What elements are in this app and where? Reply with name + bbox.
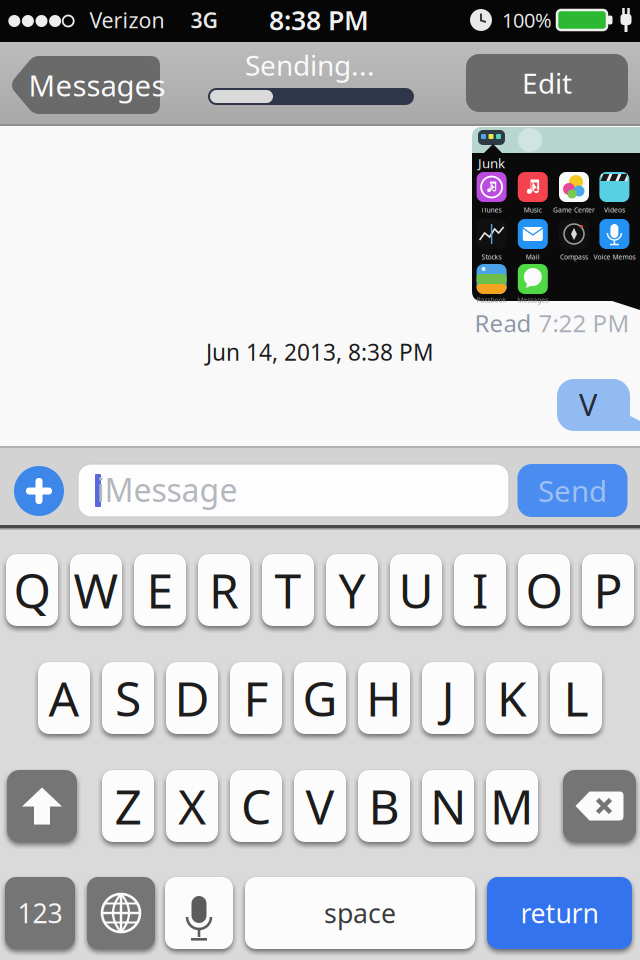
button[interactable]: Shift bbox=[7, 770, 77, 842]
button[interactable]: K bbox=[486, 662, 538, 734]
button[interactable]: F bbox=[230, 662, 282, 734]
staticText: Music bbox=[524, 206, 542, 214]
staticText: F bbox=[243, 666, 268, 730]
button[interactable]: X bbox=[166, 770, 218, 842]
button[interactable]: R bbox=[198, 554, 250, 626]
button[interactable]: D bbox=[166, 662, 218, 734]
staticText: iMessage bbox=[96, 468, 237, 511]
button[interactable]: L bbox=[550, 662, 602, 734]
button[interactable]: iMessage text field bbox=[78, 464, 509, 517]
staticText: V bbox=[579, 384, 597, 424]
button[interactable]: W bbox=[70, 554, 122, 626]
button[interactable]: return bbox=[487, 877, 632, 949]
staticText: Sending... bbox=[245, 46, 375, 84]
staticText: 8:38 PM bbox=[269, 2, 369, 38]
button[interactable]: Next keyboard bbox=[87, 877, 155, 949]
staticText: Stocks bbox=[482, 253, 502, 261]
staticText: R bbox=[209, 558, 239, 622]
button[interactable]: C bbox=[230, 770, 282, 842]
staticText: Compass bbox=[560, 253, 588, 261]
button[interactable]: E bbox=[134, 554, 186, 626]
staticText: I bbox=[472, 558, 488, 622]
staticText: W bbox=[73, 558, 118, 622]
button[interactable]: M bbox=[486, 770, 538, 842]
staticText: Q bbox=[13, 558, 50, 622]
staticText: iTunes bbox=[482, 206, 502, 214]
staticText: M bbox=[490, 774, 534, 838]
button[interactable]: B bbox=[358, 770, 410, 842]
staticText: space bbox=[324, 895, 396, 931]
button[interactable]: O bbox=[518, 554, 570, 626]
staticText: E bbox=[146, 558, 173, 622]
button[interactable]: Y bbox=[326, 554, 378, 626]
button[interactable]: P bbox=[582, 554, 634, 626]
staticText: Voice Memos bbox=[593, 253, 635, 261]
button[interactable]: N bbox=[422, 770, 474, 842]
staticText: U bbox=[398, 558, 433, 622]
button[interactable]: Edit bbox=[466, 54, 628, 112]
staticText: 7:22 PM bbox=[538, 307, 629, 339]
staticText: V bbox=[305, 774, 334, 838]
button[interactable]: H bbox=[358, 662, 410, 734]
staticText: Passbook bbox=[477, 296, 507, 304]
button[interactable]: Delete bbox=[563, 770, 636, 842]
staticText: C bbox=[241, 774, 271, 838]
staticText: Junk bbox=[478, 154, 505, 172]
button[interactable]: J bbox=[422, 662, 474, 734]
staticText: return bbox=[520, 895, 598, 931]
staticText: T bbox=[274, 558, 301, 622]
staticText: Messages bbox=[517, 296, 548, 304]
staticText: Videos bbox=[604, 206, 625, 214]
button[interactable]: U bbox=[390, 554, 442, 626]
staticText: J bbox=[441, 666, 454, 730]
staticText: K bbox=[497, 666, 527, 730]
staticText: Mail bbox=[526, 253, 540, 261]
staticText: O bbox=[525, 558, 562, 622]
button[interactable]: G bbox=[294, 662, 346, 734]
staticText: 100% bbox=[502, 7, 552, 33]
button[interactable]: S bbox=[102, 662, 154, 734]
button[interactable]: Send bbox=[517, 464, 627, 517]
staticText: X bbox=[178, 774, 206, 838]
staticText: Send bbox=[538, 471, 607, 510]
staticText: Jun 14, 2013, 8:38 PM bbox=[206, 337, 434, 367]
staticText: Y bbox=[338, 558, 365, 622]
button[interactable]: A bbox=[38, 662, 90, 734]
staticText: G bbox=[302, 666, 337, 730]
button[interactable]: V bbox=[294, 770, 346, 842]
staticText: A bbox=[48, 666, 79, 730]
button[interactable]: I bbox=[454, 554, 506, 626]
staticText: 123 bbox=[17, 895, 62, 931]
button[interactable]: Z bbox=[102, 770, 154, 842]
staticText: S bbox=[115, 666, 141, 730]
staticText: Edit bbox=[522, 64, 572, 102]
staticText: Verizon bbox=[89, 6, 164, 34]
staticText: Messages bbox=[28, 65, 165, 104]
staticText: 3G bbox=[190, 6, 217, 34]
staticText: D bbox=[174, 666, 209, 730]
staticText: P bbox=[593, 558, 622, 622]
staticText: B bbox=[368, 774, 399, 838]
staticText: Read bbox=[474, 307, 531, 339]
button[interactable]: Q bbox=[6, 554, 58, 626]
staticText: H bbox=[366, 666, 402, 730]
button[interactable]: Messages bbox=[10, 56, 160, 114]
staticText: L bbox=[563, 666, 588, 730]
button[interactable]: T bbox=[262, 554, 314, 626]
staticText: Z bbox=[114, 774, 141, 838]
button[interactable]: Numbers bbox=[5, 877, 75, 949]
button[interactable]: Dictation bbox=[165, 877, 233, 949]
button[interactable]: Attach photo bbox=[14, 466, 64, 516]
staticText: N bbox=[430, 774, 466, 838]
button[interactable]: space bbox=[245, 877, 475, 949]
staticText: Game Center bbox=[553, 206, 595, 214]
